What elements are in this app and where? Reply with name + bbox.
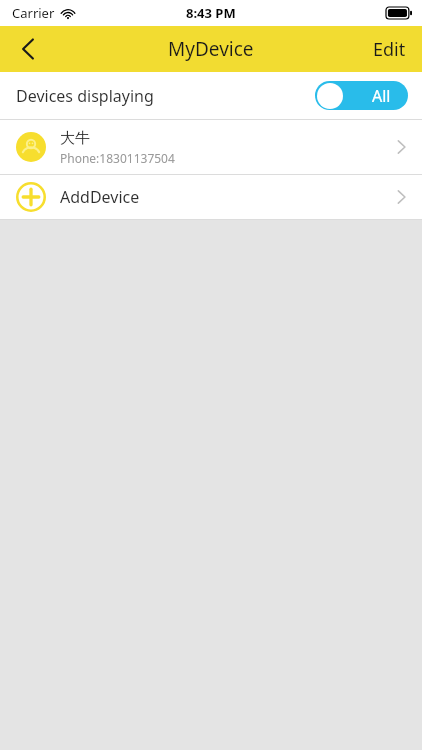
button[interactable]: Back: [0, 26, 56, 72]
staticText: 8:43 PM: [186, 4, 236, 22]
staticText: All: [372, 85, 391, 107]
staticText: Devices displaying: [16, 85, 154, 107]
staticText: AddDevice: [60, 186, 397, 208]
staticText: Phone:18301137504: [60, 150, 175, 166]
button[interactable]: 大牛: [0, 120, 422, 174]
staticText: 大牛: [60, 129, 90, 148]
staticText: Edit: [373, 37, 406, 62]
button[interactable]: AddDevice: [0, 175, 422, 219]
button[interactable]: Edit: [357, 26, 422, 72]
staticText: Carrier: [12, 4, 55, 22]
staticText: MyDevice: [168, 36, 254, 62]
button[interactable]: All: [315, 81, 408, 110]
